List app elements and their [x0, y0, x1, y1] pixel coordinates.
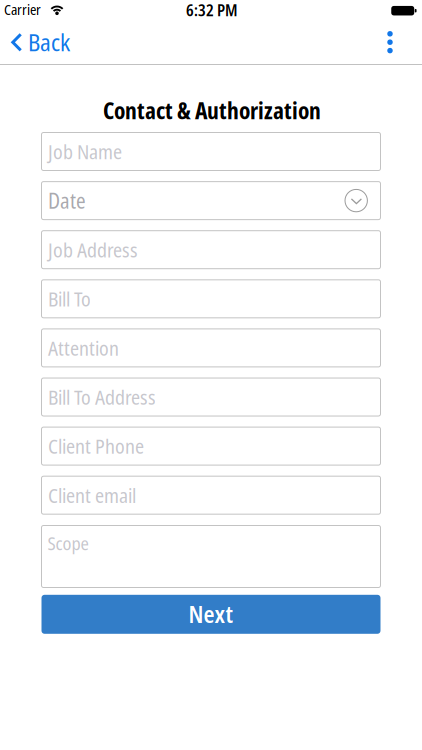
button[interactable]: Scope — [41, 525, 380, 587]
staticText: 6:32 PM — [186, 0, 238, 21]
staticText: Bill To — [48, 285, 91, 312]
button[interactable]: Job Name — [41, 132, 380, 170]
staticText: Job Address — [48, 236, 138, 263]
staticText: Bill To Address — [48, 383, 156, 411]
staticText: Contact & Authorization — [103, 95, 321, 126]
button[interactable]: Bill To — [41, 280, 380, 318]
button[interactable]: More — [379, 29, 401, 55]
button[interactable]: Client email — [41, 476, 380, 514]
staticText: Back — [28, 26, 70, 58]
staticText: Client Phone — [48, 432, 144, 460]
staticText: Attention — [48, 334, 119, 361]
staticText: Carrier — [4, 0, 41, 19]
staticText: Scope — [47, 530, 88, 556]
button[interactable]: Back — [11, 26, 70, 58]
staticText: Date — [48, 186, 86, 215]
staticText: Next — [188, 599, 233, 630]
button[interactable]: Attention — [41, 329, 380, 367]
button[interactable]: Client Phone — [41, 427, 380, 465]
button[interactable]: Date — [41, 182, 380, 220]
button[interactable]: Next — [41, 595, 380, 634]
staticText: Client email — [48, 482, 136, 509]
button[interactable]: Bill To Address — [41, 378, 380, 416]
button[interactable]: Job Address — [41, 231, 380, 269]
staticText: Job Name — [48, 138, 122, 165]
